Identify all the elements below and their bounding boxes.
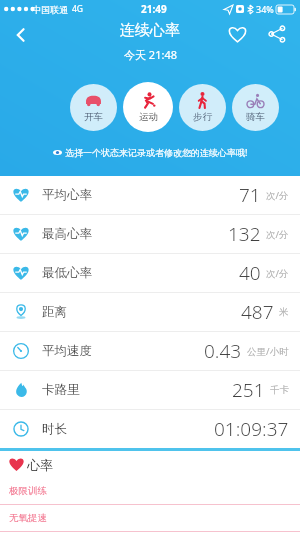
staticText: 无氧提速	[9, 512, 47, 524]
staticText: 极限训练	[9, 485, 47, 497]
button[interactable]: 最低心率	[0, 254, 300, 292]
staticText: 卡路里	[42, 382, 80, 398]
staticText: 01:09:37	[214, 416, 289, 442]
staticText: 次/分	[266, 228, 289, 241]
button[interactable]: 平均速度	[0, 332, 300, 370]
staticText: 132	[228, 221, 261, 247]
staticText: 千卡	[270, 384, 289, 396]
button[interactable]: 卡路里	[0, 371, 300, 409]
staticText: 距离	[42, 304, 67, 320]
button[interactable]: 距离	[0, 293, 300, 331]
staticText: 连续心率	[120, 21, 180, 40]
button[interactable]: 平均心率	[0, 176, 300, 214]
button[interactable]: 开车	[70, 84, 117, 131]
staticText: 公里/小时	[247, 345, 289, 358]
button[interactable]: 最高心率	[0, 215, 300, 253]
staticText: 选择一个状态来记录或者修改您的连续心率哦!	[65, 146, 248, 158]
button[interactable]: 无氧提速	[0, 505, 300, 531]
button[interactable]: Favorite	[222, 19, 252, 49]
button[interactable]: 骑车	[232, 84, 279, 131]
button[interactable]: 步行	[179, 84, 226, 131]
staticText: 34%	[256, 3, 274, 15]
staticText: 487	[241, 299, 274, 325]
staticText: 平均速度	[42, 343, 92, 359]
staticText: 平均心率	[42, 187, 92, 203]
staticText: 骑车	[246, 111, 265, 123]
staticText: 次/分	[266, 267, 289, 280]
button[interactable]: 极限训练	[0, 478, 300, 504]
staticText: 步行	[193, 111, 212, 123]
button[interactable]: Back	[4, 18, 38, 52]
button[interactable]: Share	[262, 19, 292, 49]
button[interactable]: 运动	[123, 82, 173, 132]
staticText: 中国联通	[32, 4, 68, 15]
staticText: 心率	[27, 457, 53, 473]
staticText: 今天 21:48	[124, 47, 177, 62]
staticText: 0.43	[204, 338, 242, 364]
staticText: 251	[232, 377, 265, 403]
staticText: 40	[239, 260, 261, 286]
staticText: 最高心率	[42, 226, 92, 242]
staticText: 次/分	[266, 189, 289, 202]
staticText: 开车	[84, 111, 103, 123]
staticText: 运动	[139, 111, 158, 123]
staticText: 米	[279, 306, 289, 318]
staticText: 时长	[42, 421, 67, 437]
staticText: 21:49	[141, 2, 167, 16]
staticText: 最低心率	[42, 265, 92, 281]
button[interactable]: 时长	[0, 410, 300, 448]
staticText: 4G	[72, 3, 84, 15]
staticText: 71	[239, 182, 261, 208]
